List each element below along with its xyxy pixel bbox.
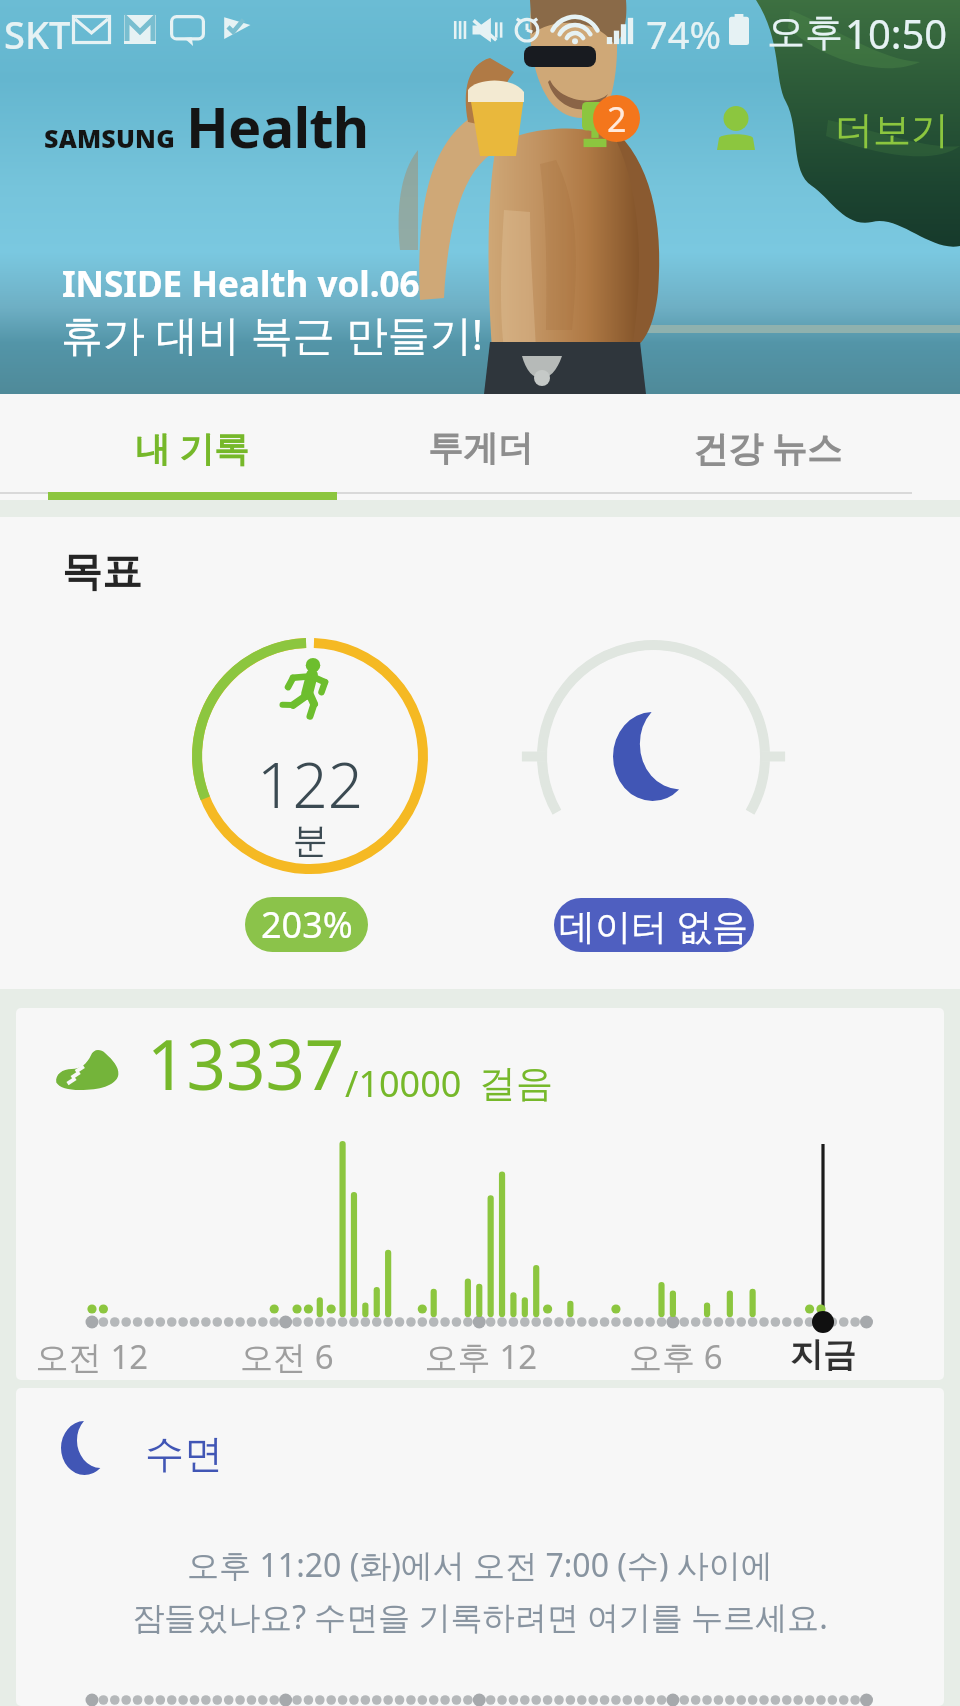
staticText: 203% xyxy=(261,900,353,949)
staticText: 투게더 xyxy=(428,426,533,470)
button[interactable]: 203% xyxy=(245,897,368,952)
button[interactable]: 투게더 xyxy=(336,399,624,497)
staticText: 오후 11:20 (화)에서 오전 7:00 (수) 사이에 잠들었나요? 수면… xyxy=(40,1543,920,1639)
staticText: 데이터 없음 xyxy=(559,901,749,950)
button[interactable]: Profile xyxy=(706,96,766,158)
staticText: 오후 xyxy=(767,8,843,56)
button[interactable]: 건강 뉴스 xyxy=(624,399,912,497)
staticText: /10000 xyxy=(345,1059,462,1108)
staticText: 내 기록 xyxy=(135,424,250,472)
button[interactable]: 데이터 없음 xyxy=(554,898,754,952)
staticText: 122 xyxy=(257,742,364,826)
button[interactable]: 13337 xyxy=(16,1008,944,1380)
staticText: 오후 12 xyxy=(381,1334,581,1379)
button[interactable]: Challenges, 2 new xyxy=(568,88,648,168)
staticText: 2 xyxy=(607,96,627,142)
button[interactable]: 더보기 xyxy=(826,98,958,162)
staticText: 걸음 xyxy=(479,1060,553,1107)
button[interactable]: 목표 xyxy=(0,517,960,989)
button[interactable]: 수면 xyxy=(16,1388,944,1706)
staticText: 오후 6 xyxy=(576,1334,776,1379)
staticText: 목표 xyxy=(62,546,142,596)
staticText: INSIDE Health vol.06 xyxy=(62,260,420,308)
button[interactable]: 내 기록 xyxy=(49,399,336,497)
button[interactable]: 122 xyxy=(192,638,428,874)
staticText: 더보기 xyxy=(835,106,949,154)
staticText: 13337 xyxy=(147,1016,345,1110)
staticText: Health xyxy=(186,88,369,164)
staticText: 지금 xyxy=(723,1334,923,1376)
staticText: SKT xyxy=(4,8,71,60)
staticText: 74% xyxy=(646,8,722,60)
staticText: 건강 뉴스 xyxy=(693,424,843,472)
staticText: SAMSUNG xyxy=(44,121,175,155)
staticText: 오전 12 xyxy=(16,1334,192,1379)
staticText: 10:50 xyxy=(845,6,948,60)
staticText: 휴가 대비 복근 만들기! xyxy=(61,305,484,362)
staticText: 수면 xyxy=(145,1429,223,1478)
staticText: 분 xyxy=(293,818,328,862)
button[interactable] xyxy=(537,640,770,873)
staticText: 오전 6 xyxy=(187,1334,387,1379)
